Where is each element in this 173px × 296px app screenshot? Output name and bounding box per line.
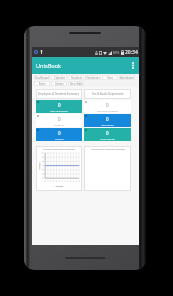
staticText: 20:34 — [125, 49, 138, 56]
staticText: Fees — [107, 76, 113, 80]
button[interactable]: Time Table — [68, 81, 84, 86]
button[interactable]: Library — [51, 81, 67, 86]
button[interactable]: 0 — [36, 114, 82, 127]
button[interactable]: Fees — [102, 75, 118, 80]
staticText: Issued Books — [100, 137, 115, 140]
button[interactable]: Exam Results — [34, 81, 50, 86]
staticText: Parents — [55, 137, 64, 140]
staticText: 0 — [58, 102, 61, 108]
button[interactable]: Calendar — [51, 75, 67, 80]
button[interactable]: 0 — [36, 128, 82, 141]
staticText: Students — [71, 76, 82, 80]
staticText: 0 — [58, 130, 61, 136]
staticText: Attendance — [120, 76, 134, 80]
button[interactable]: Attendance — [119, 75, 135, 80]
staticText: Fee & Books Department — [92, 92, 124, 96]
button[interactable]: 0 — [84, 114, 131, 127]
button[interactable]: 0 — [84, 128, 131, 141]
staticText: 0 — [106, 102, 109, 108]
staticText: UnisBook — [36, 62, 62, 70]
staticText: Employees & Students Summary — [38, 92, 80, 96]
button[interactable]: Employees — [85, 75, 101, 80]
staticText: Time Table — [69, 82, 83, 86]
staticText: 0 — [58, 116, 61, 122]
staticText: Monthly attendance overview — [43, 148, 75, 151]
staticText: Total Employees — [50, 109, 69, 112]
button[interactable]: Dashboard — [34, 75, 50, 80]
staticText: Monthly fee collection overview — [91, 148, 125, 151]
staticText: Exam Results — [34, 82, 50, 86]
button[interactable]: Students — [68, 75, 84, 80]
staticText: 0 — [106, 116, 109, 122]
staticText: 89% — [113, 51, 120, 55]
staticText: Employees — [86, 76, 100, 80]
button[interactable]: 0 — [36, 100, 82, 113]
staticText: Library — [55, 82, 64, 86]
staticText: Total Fee Collected — [97, 109, 118, 112]
button[interactable]: 0 — [84, 100, 131, 113]
staticText: Total Books — [101, 123, 114, 126]
staticText: 0 — [106, 130, 109, 136]
staticText: Dashboard — [35, 76, 49, 80]
button[interactable]: More options — [127, 57, 139, 74]
staticText: Calendar — [54, 76, 65, 80]
staticText: Students — [54, 123, 64, 126]
